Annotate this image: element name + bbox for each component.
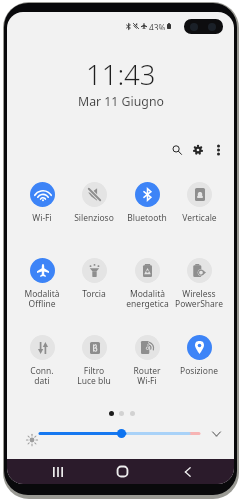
button[interactable]: Wi-Fi xyxy=(16,182,68,234)
button[interactable]: Verticale xyxy=(173,182,225,234)
button[interactable]: Filtro Luce blu xyxy=(68,335,120,387)
button[interactable]: Posizione xyxy=(173,335,225,387)
staticText: Modalità Offline xyxy=(24,288,60,309)
button[interactable]: Page 1 xyxy=(109,411,114,416)
button[interactable]: Page 3 xyxy=(130,411,135,416)
staticText: Posizione xyxy=(180,365,218,377)
staticText: 11:43 xyxy=(86,56,156,93)
button[interactable]: Page 2 xyxy=(119,411,124,416)
staticText: Modalità energetica xyxy=(126,288,169,309)
staticText: Wireless PowerShare xyxy=(175,288,223,309)
button[interactable]: Home xyxy=(110,459,134,484)
button[interactable]: Router Wi-Fi xyxy=(121,335,173,387)
button[interactable]: Conn. dati xyxy=(16,335,68,387)
staticText: 43% xyxy=(149,22,166,30)
staticText: Mar 11 Giugno xyxy=(78,93,164,110)
staticText: Torcia xyxy=(82,288,106,300)
button[interactable]: Modalità energetica xyxy=(121,258,173,310)
button[interactable]: Expand quick settings xyxy=(205,423,227,445)
staticText: Silenzioso xyxy=(74,212,114,224)
staticText: Bluetooth xyxy=(127,212,167,224)
button[interactable]: Brightness xyxy=(19,427,45,453)
staticText: Conn. dati xyxy=(30,365,54,386)
button[interactable]: Wireless PowerShare xyxy=(173,258,225,310)
button[interactable]: More options xyxy=(208,140,228,160)
staticText: Wi-Fi xyxy=(32,212,52,224)
staticText: Filtro Luce blu xyxy=(77,365,111,386)
staticText: Router Wi-Fi xyxy=(133,365,161,386)
button[interactable]: Recents xyxy=(46,459,70,484)
button[interactable]: Modalità Offline xyxy=(16,258,68,310)
button[interactable]: Torcia xyxy=(68,258,120,310)
button[interactable]: Brightness level xyxy=(117,429,126,438)
button[interactable]: Settings xyxy=(188,140,208,160)
button[interactable]: Back xyxy=(175,459,199,484)
staticText: Verticale xyxy=(182,212,217,224)
button[interactable]: Search xyxy=(167,140,187,160)
button[interactable]: Silenzioso xyxy=(68,182,120,234)
button[interactable]: Bluetooth xyxy=(121,182,173,234)
